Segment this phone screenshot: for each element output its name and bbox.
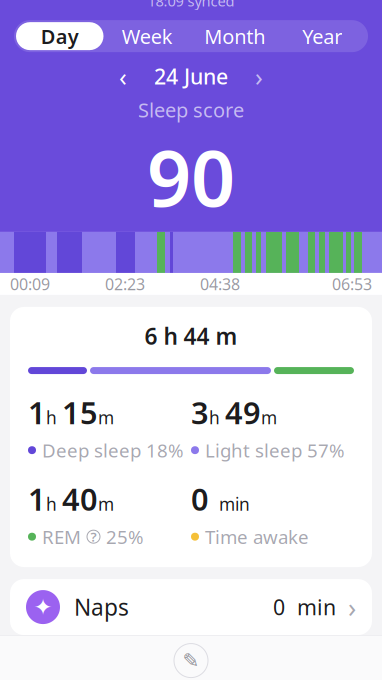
button[interactable]: Day [16,22,103,50]
staticText: Light sleep 57% [205,438,345,463]
staticText: ✦ [33,594,52,620]
staticText: 06:53 [332,273,372,294]
staticText: Month [204,23,265,49]
button[interactable]: Edit [0,636,382,680]
staticText: 90 [147,125,235,228]
button[interactable]: Month [191,22,278,50]
staticText: h [46,406,62,429]
staticText: m [98,406,114,429]
staticText: 0 min [273,593,336,621]
staticText: ? [90,528,96,545]
staticText: 25% [106,524,144,549]
staticText: 1 [28,392,46,433]
staticText: › [348,589,356,625]
staticText: h [46,493,62,516]
staticText: Year [302,23,342,49]
button[interactable]: Week [103,22,191,50]
staticText: Week [122,23,173,49]
staticText: 00:09 [10,273,50,294]
staticText: h [209,406,225,429]
staticText: 40 [62,479,98,519]
staticText: ✎ [182,649,199,672]
staticText: ‹ [119,59,127,93]
button[interactable]: ✦ [0,579,382,635]
staticText: › [255,59,263,93]
staticText: Naps [74,592,129,622]
staticText: m [261,406,277,429]
staticText: 0 [191,479,209,519]
button[interactable]: Year [278,22,366,50]
staticText: 6 h 44 m [144,321,237,351]
staticText: 02:23 [105,273,145,294]
staticText: m [98,493,114,516]
staticText: min [209,493,250,516]
staticText: Sleep score [138,96,244,123]
staticText: 04:38 [200,273,240,294]
staticText: Time awake [205,524,309,549]
staticText: 1 [28,479,46,519]
staticText: 15 [62,392,98,433]
staticText: 3 [191,392,209,433]
button[interactable]: Next day [246,63,272,89]
staticText: 18:09 synced [147,0,234,10]
staticText: 49 [225,392,261,433]
staticText: Day [41,23,79,49]
staticText: You slept better than 86% of users [50,234,331,257]
staticText: 24 June [154,62,228,90]
button[interactable]: Previous day [110,63,136,89]
staticText: Deep sleep 18% [42,438,184,463]
staticText: REM [42,524,81,549]
